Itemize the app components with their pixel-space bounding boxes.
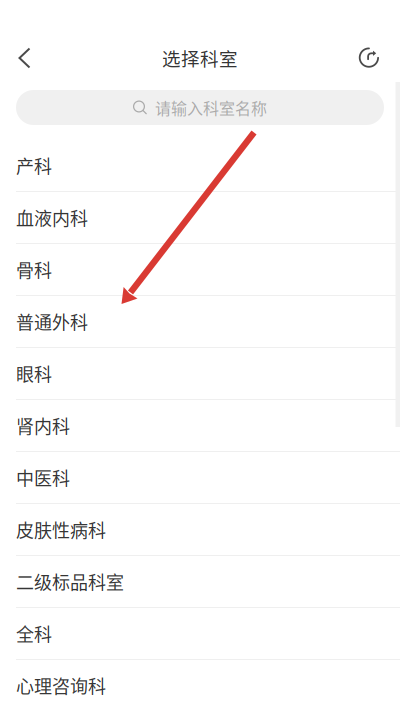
staticText: 眼科 [16, 360, 52, 387]
staticText: 普通外科 [16, 308, 88, 335]
button[interactable]: 中医科 [0, 452, 400, 504]
button[interactable]: 心理咨询科 [0, 660, 400, 711]
button[interactable]: 二级标品科室 [0, 556, 400, 608]
button[interactable]: 普通外科 [0, 296, 400, 348]
button[interactable]: 皮肤性病科 [0, 504, 400, 556]
button[interactable]: 请输入科室名称 [16, 90, 384, 125]
staticText: 二级标品科室 [16, 568, 124, 595]
staticText: 产科 [16, 152, 52, 179]
staticText: 心理咨询科 [16, 672, 106, 699]
staticText: 肾内科 [16, 412, 70, 439]
button[interactable]: 肾内科 [0, 400, 400, 452]
button[interactable]: 产科 [0, 140, 400, 192]
button[interactable]: 眼科 [0, 348, 400, 400]
button[interactable]: 全科 [0, 608, 400, 660]
button[interactable]: 血液内科 [0, 192, 400, 244]
staticText: 选择科室 [162, 45, 238, 71]
staticText: 血液内科 [16, 204, 88, 231]
button[interactable]: 骨科 [0, 244, 400, 296]
staticText: 全科 [16, 620, 52, 647]
staticText: 请输入科室名称 [155, 96, 267, 119]
staticText: 中医科 [16, 464, 70, 491]
button[interactable]: 返回 [5, 36, 44, 80]
button[interactable]: 刷新 [348, 36, 390, 80]
staticText: 皮肤性病科 [16, 516, 106, 543]
staticText: 骨科 [16, 256, 52, 283]
